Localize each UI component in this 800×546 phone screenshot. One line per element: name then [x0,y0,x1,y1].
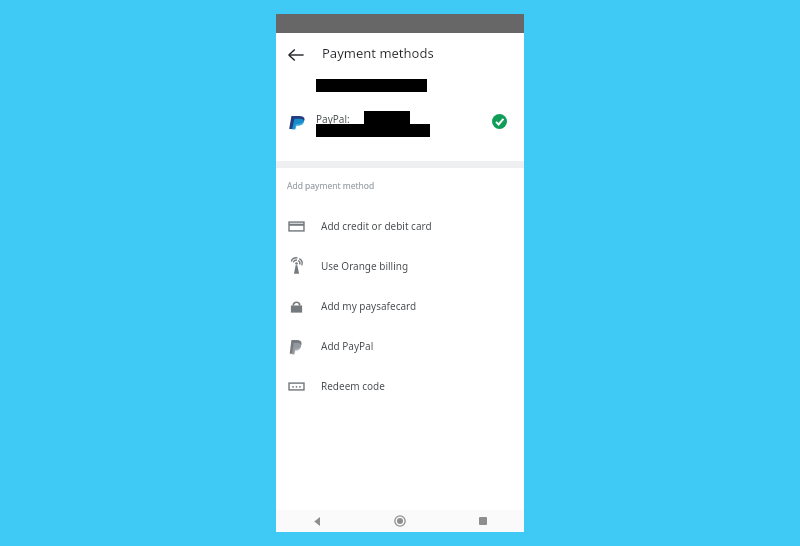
button[interactable]: Redeem code [276,366,524,406]
staticText: Redeem code [321,379,385,393]
button[interactable]: Home [358,510,442,532]
button[interactable]: Recents [442,510,524,532]
staticText: Add payment method [287,180,375,192]
button[interactable]: Use Orange billing [276,246,524,286]
staticText: PayPal: [316,112,350,126]
staticText: Add PayPal [321,339,374,353]
staticText: Use Orange billing [321,259,409,273]
staticText: Payment methods [322,44,434,62]
button[interactable]: Add PayPal [276,326,524,366]
button[interactable]: PayPal: [276,107,524,149]
button[interactable]: Add my paysafecard [276,286,524,326]
staticText: Add credit or debit card [321,219,432,233]
staticText: Add my paysafecard [321,299,417,313]
button[interactable]: Add credit or debit card [276,206,524,246]
button[interactable]: Back [276,510,358,532]
button[interactable]: Back [286,45,306,65]
